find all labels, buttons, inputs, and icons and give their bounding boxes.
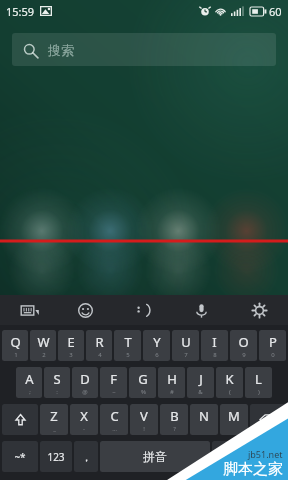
staticText: J [199, 370, 203, 388]
button[interactable]: Z [40, 404, 68, 435]
staticText: Q [10, 333, 21, 351]
button[interactable]: T [114, 330, 141, 361]
staticText: … [112, 425, 117, 433]
button[interactable]: Voice input [172, 295, 230, 325]
staticText: % [141, 388, 146, 396]
staticText: 2 [42, 351, 46, 359]
staticText: 7 [184, 351, 188, 359]
staticText: I [212, 333, 217, 351]
staticText: H [167, 370, 177, 388]
button[interactable]: W [30, 330, 56, 361]
staticText: W [37, 333, 50, 351]
button[interactable]: C [100, 404, 128, 435]
button[interactable]: O [230, 330, 257, 361]
staticText: M [228, 407, 240, 425]
button[interactable]: J [187, 367, 214, 398]
button[interactable]: I [201, 330, 228, 361]
staticText: # [170, 388, 174, 396]
staticText: R [95, 333, 104, 351]
button[interactable]: P [259, 330, 286, 361]
button[interactable]: L [245, 367, 272, 398]
button[interactable]: Emoji [57, 295, 114, 325]
staticText: X [80, 407, 88, 425]
button[interactable]: S [44, 367, 70, 398]
staticText: U [181, 333, 191, 351]
staticText: ~* [14, 450, 26, 464]
staticText: F [110, 370, 117, 388]
staticText: 4 [98, 351, 102, 359]
staticText: ) [258, 388, 260, 396]
button[interactable]: F [100, 367, 127, 398]
staticText: 。 [219, 450, 230, 464]
button[interactable]: Settings [230, 295, 288, 325]
button[interactable]: M [220, 404, 248, 435]
staticText: _ [53, 425, 56, 433]
staticText: ~ [112, 388, 116, 396]
staticText: 0 [271, 351, 275, 359]
staticText: P [269, 333, 277, 351]
button[interactable]: ， [74, 441, 98, 472]
button[interactable]: H [158, 367, 185, 398]
staticText: 5 [126, 351, 130, 359]
staticText: 9 [242, 351, 246, 359]
button[interactable]: Enter [238, 441, 286, 472]
staticText: Y [153, 333, 161, 351]
staticText: B [170, 407, 179, 425]
staticText: 搜索 [48, 42, 74, 58]
staticText: 15:59 [6, 4, 35, 19]
staticText: ; [29, 388, 31, 396]
button[interactable]: E [58, 330, 84, 361]
button[interactable]: A [16, 367, 42, 398]
staticText: ， [81, 450, 92, 464]
staticText: 拼音 [143, 449, 167, 464]
staticText: @ [82, 388, 88, 396]
staticText: C [110, 407, 119, 425]
staticText: A [25, 370, 34, 388]
button[interactable]: R [86, 330, 112, 361]
button[interactable]: 。 [212, 441, 236, 472]
button[interactable]: 拼音 [100, 441, 210, 472]
button[interactable]: D [72, 367, 98, 398]
button[interactable]: 搜索 [12, 33, 276, 66]
staticText: G [138, 370, 148, 388]
button[interactable]: V [130, 404, 158, 435]
button[interactable]: Q [2, 330, 28, 361]
staticText: O [238, 333, 249, 351]
button[interactable]: Backspace [250, 404, 286, 435]
button[interactable]: Keyboard layout [0, 295, 57, 325]
staticText: N [199, 407, 209, 425]
button[interactable]: X [70, 404, 98, 435]
button[interactable]: Shift [2, 404, 38, 435]
staticText: - [83, 425, 85, 433]
staticText: ! [143, 425, 145, 433]
button[interactable]: K [216, 367, 243, 398]
staticText: 123 [47, 450, 65, 464]
staticText: K [225, 370, 234, 388]
staticText: S [53, 370, 61, 388]
staticText: E [67, 333, 75, 351]
button[interactable]: 123 [40, 441, 72, 472]
button[interactable]: G [129, 367, 156, 398]
staticText: ( [229, 388, 231, 396]
button[interactable]: Y [143, 330, 170, 361]
staticText: ? [173, 425, 176, 433]
staticText: 8 [213, 351, 217, 359]
staticText: T [124, 333, 132, 351]
staticText: & [198, 388, 203, 396]
button[interactable]: Emoticons [114, 295, 172, 325]
staticText: Z [50, 407, 58, 425]
staticText: 6 [155, 351, 159, 359]
staticText: 3 [69, 351, 73, 359]
button[interactable]: U [172, 330, 199, 361]
staticText: D [80, 370, 90, 388]
staticText: 60 [269, 4, 282, 19]
staticText: 脚本之家 [223, 460, 283, 479]
button[interactable]: ~* [2, 441, 38, 472]
staticText: 1 [14, 351, 18, 359]
button[interactable]: B [160, 404, 188, 435]
staticText: V [140, 407, 148, 425]
button[interactable]: N [190, 404, 218, 435]
staticText: jb51.net [248, 448, 283, 460]
staticText: L [255, 370, 262, 388]
staticText: : [56, 388, 58, 396]
